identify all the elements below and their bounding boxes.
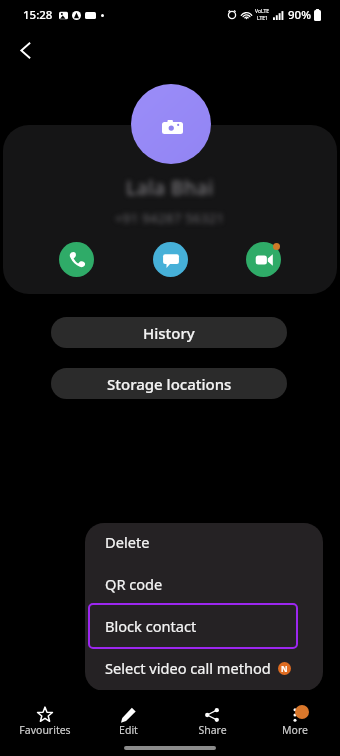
button[interactable]: Message bbox=[153, 242, 188, 277]
staticText: VoLTE bbox=[255, 8, 270, 15]
button[interactable]: Share bbox=[173, 706, 251, 737]
button[interactable]: Contact photo bbox=[131, 84, 211, 164]
staticText: Share bbox=[198, 723, 227, 737]
staticText: Lala Bhai bbox=[126, 175, 214, 201]
staticText: 90% bbox=[288, 7, 311, 23]
button[interactable]: Block contact bbox=[88, 603, 298, 649]
staticText: Select video call method bbox=[105, 658, 271, 678]
button[interactable]: Select video call method bbox=[88, 645, 298, 691]
staticText: Delete bbox=[105, 532, 150, 552]
staticText: More bbox=[282, 723, 308, 737]
staticText: Storage locations bbox=[107, 374, 232, 394]
staticText: Block contact bbox=[105, 616, 197, 636]
staticText: +91 94287 56321 bbox=[115, 209, 225, 227]
button[interactable]: Storage locations bbox=[51, 368, 287, 399]
staticText: 15:28 bbox=[23, 7, 53, 23]
button[interactable]: Edit bbox=[89, 706, 167, 737]
staticText: N bbox=[281, 663, 288, 674]
staticText: Edit bbox=[119, 723, 138, 737]
button[interactable]: Back bbox=[8, 33, 42, 67]
button[interactable]: More bbox=[256, 706, 334, 737]
staticText: History bbox=[143, 323, 195, 343]
staticText: Favourites bbox=[19, 723, 71, 737]
button[interactable]: Call bbox=[59, 242, 94, 277]
button[interactable]: Video call bbox=[246, 242, 281, 277]
staticText: LTE1 bbox=[257, 15, 268, 22]
button[interactable]: QR code bbox=[88, 561, 298, 607]
button[interactable]: Delete bbox=[88, 523, 298, 565]
staticText: QR code bbox=[105, 574, 163, 594]
button[interactable]: History bbox=[51, 317, 287, 348]
button[interactable]: Favourites bbox=[6, 706, 84, 737]
